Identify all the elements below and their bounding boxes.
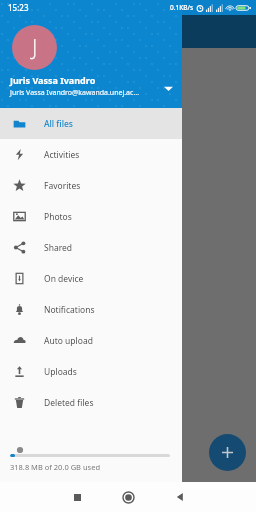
- button[interactable]: Share: [0, 142, 256, 189]
- button[interactable]: On device: [0, 263, 182, 294]
- staticText: Favorites: [44, 180, 81, 192]
- button[interactable]: Share: [0, 330, 256, 377]
- button[interactable]: Deleted files: [0, 387, 182, 418]
- button[interactable]: Recent apps: [52, 482, 103, 512]
- button[interactable]: Share: [0, 48, 256, 95]
- button[interactable]: [0, 440, 182, 454]
- button[interactable]: Favorites: [0, 170, 182, 201]
- staticText: All files: [44, 118, 73, 130]
- button[interactable]: Back: [154, 482, 205, 512]
- button[interactable]: Shared: [0, 232, 182, 263]
- button[interactable]: Activities: [0, 139, 182, 170]
- staticText: Shared: [44, 242, 73, 254]
- button[interactable]: Home: [103, 482, 154, 512]
- staticText: Uploads: [44, 366, 77, 378]
- staticText: Auto upload: [44, 335, 93, 347]
- button[interactable]: Switch account: [158, 78, 178, 98]
- staticText: Activities: [44, 149, 80, 161]
- button[interactable]: Auto upload: [0, 325, 182, 356]
- staticText: J: [32, 33, 38, 62]
- button[interactable]: Share: [0, 236, 256, 283]
- staticText: Photos: [44, 211, 72, 223]
- button[interactable]: Add: [209, 434, 246, 471]
- staticText: 15:23: [8, 2, 29, 13]
- button[interactable]: Kemungkinan besar tidak: [0, 95, 256, 142]
- button[interactable]: All files: [0, 108, 182, 139]
- button[interactable]: Share: [0, 377, 256, 424]
- button[interactable]: Share: [0, 283, 256, 330]
- staticText: On device: [44, 273, 84, 285]
- button[interactable]: Share: [0, 189, 256, 236]
- staticText: 318.8 MB of 20.0 GB used: [10, 462, 100, 472]
- button[interactable]: J: [12, 25, 57, 70]
- staticText: Notifications: [44, 304, 95, 316]
- staticText: 0.1KB/s: [170, 3, 194, 12]
- button[interactable]: Photos: [0, 201, 182, 232]
- staticText: Deleted files: [44, 397, 94, 409]
- staticText: Juris Vassa Ivandro: [10, 74, 96, 86]
- button[interactable]: Notifications: [0, 294, 182, 325]
- staticText: Juris Vassa Ivandro@kawanda.unej.ac…: [10, 88, 139, 98]
- button[interactable]: Uploads: [0, 356, 182, 387]
